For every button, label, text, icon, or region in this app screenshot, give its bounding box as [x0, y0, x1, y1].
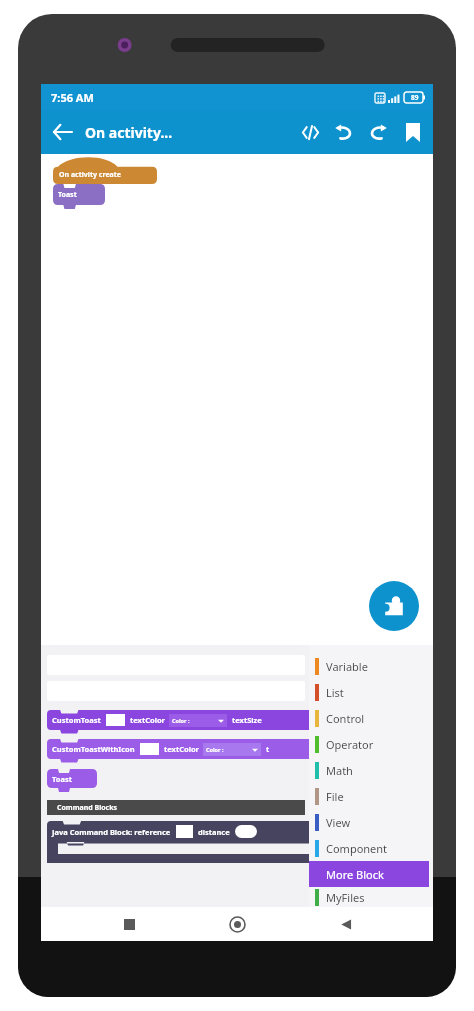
staticText: Math	[326, 763, 353, 778]
staticText: Toast	[58, 190, 77, 200]
staticText: Variable	[326, 659, 368, 674]
staticText: distance	[198, 827, 230, 837]
button[interactable]: Home	[216, 907, 258, 941]
button[interactable]: More Block	[309, 861, 429, 887]
button[interactable]: Operator	[309, 731, 433, 757]
staticText: Color :	[206, 746, 224, 753]
button[interactable]: List	[309, 679, 433, 705]
staticText: Command Blocks	[57, 803, 118, 813]
staticText: Java Command Block: reference	[52, 827, 171, 837]
button[interactable]: Bookmark	[395, 114, 431, 150]
button[interactable]: Back	[325, 907, 367, 941]
staticText: textSize	[232, 715, 262, 725]
button[interactable]: Control	[309, 705, 433, 731]
staticText: CustomToast	[52, 715, 101, 725]
staticText: Control	[326, 711, 365, 726]
button[interactable]: Add block	[369, 581, 419, 631]
staticText: textColor	[130, 715, 165, 725]
staticText: View	[326, 815, 351, 830]
staticText: 89	[411, 93, 419, 102]
button[interactable]: CustomToast	[47, 710, 309, 730]
button[interactable]: Variable	[309, 653, 433, 679]
button[interactable]: Command Blocks	[47, 800, 305, 815]
staticText: 7:56 AM	[51, 90, 94, 105]
staticText: Color :	[172, 717, 190, 724]
button[interactable]: MyFiles	[309, 887, 433, 907]
staticText: More Block	[326, 867, 384, 882]
button[interactable]: Component	[309, 835, 433, 861]
button[interactable]: Redo	[361, 115, 395, 149]
staticText: On activity...	[85, 123, 173, 142]
staticText: Component	[326, 841, 388, 856]
staticText: List	[326, 685, 344, 700]
staticText: File	[326, 789, 344, 804]
button[interactable]: Java Command Block: reference	[47, 821, 309, 863]
button[interactable]: Back	[41, 111, 83, 153]
button[interactable]: Recents	[108, 907, 150, 941]
staticText: t	[266, 744, 270, 754]
staticText: On activity create	[59, 170, 121, 180]
button[interactable]: Source code	[293, 115, 327, 149]
staticText: Operator	[326, 737, 374, 752]
button[interactable]: CustomToastWithIcon	[47, 739, 309, 759]
button[interactable]: File	[309, 783, 433, 809]
button[interactable]: Undo	[327, 115, 361, 149]
staticText: Toast	[52, 774, 73, 784]
staticText: MyFiles	[326, 890, 365, 905]
staticText: CustomToastWithIcon	[52, 744, 135, 754]
button[interactable]: Math	[309, 757, 433, 783]
staticText: textColor	[164, 744, 199, 754]
button[interactable]: View	[309, 809, 433, 835]
button[interactable]: Toast	[47, 769, 97, 788]
